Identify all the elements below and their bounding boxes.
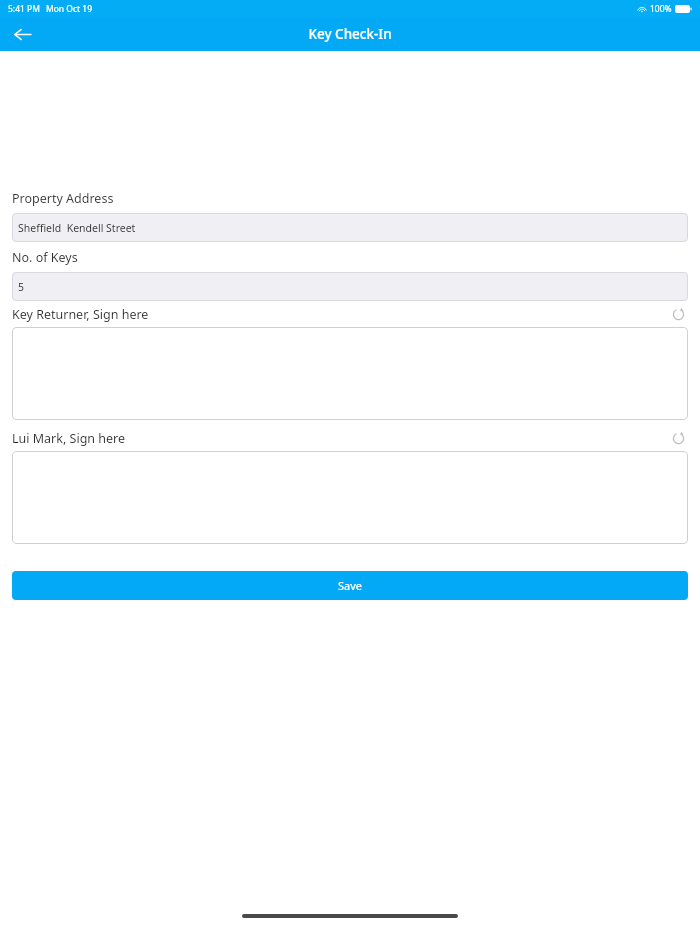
staticText: Save — [338, 578, 363, 593]
button[interactable]: Sheffield Kendell Street — [12, 213, 688, 242]
staticText: No. of Keys — [12, 249, 78, 266]
staticText: Mon Oct 19 — [46, 3, 93, 15]
button[interactable]: Clear signature — [668, 304, 688, 324]
button[interactable]: Back — [6, 18, 38, 50]
button[interactable]: Save — [12, 571, 688, 600]
staticText: 5 — [18, 280, 25, 294]
staticText: 5:41 PM — [8, 3, 40, 15]
button[interactable]: Signature pad — [12, 327, 688, 420]
staticText: Lui Mark, Sign here — [12, 430, 668, 447]
button[interactable]: Clear signature — [668, 428, 688, 448]
staticText: Sheffield Kendell Street — [18, 221, 136, 235]
button[interactable]: 5 — [12, 272, 688, 301]
staticText: Property Address — [12, 190, 114, 207]
staticText: 100% — [650, 3, 672, 15]
button[interactable]: Signature pad — [12, 451, 688, 544]
staticText: Key Returner, Sign here — [12, 306, 668, 323]
staticText: Key Check-In — [308, 25, 392, 43]
